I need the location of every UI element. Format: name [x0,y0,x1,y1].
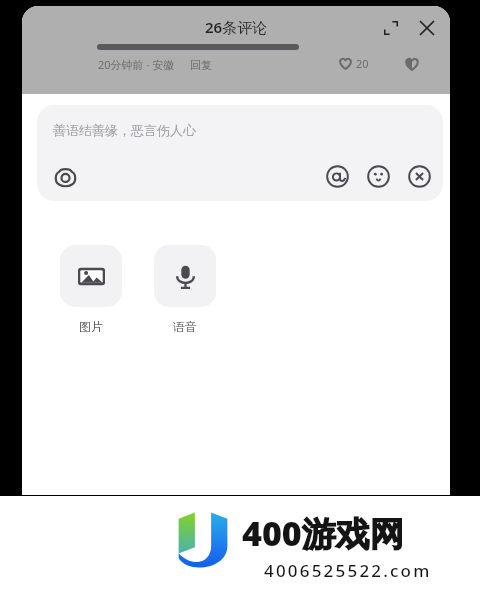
staticText: 26条评论 [205,17,268,37]
button[interactable]: Close [414,15,440,41]
staticText: 回复 [190,58,212,72]
button[interactable]: Emoji [361,159,395,193]
staticText: 图片 [79,319,103,334]
staticText: 20分钟前 · 安徽 [98,57,175,72]
button[interactable]: Clear [402,159,436,193]
staticText: 400游戏网 [242,510,404,556]
staticText: 20 [356,56,369,71]
button[interactable]: 20 [338,56,369,71]
staticText: 语音 [173,319,197,334]
button[interactable]: Camera [48,159,82,193]
staticText: 善语结善缘，恶言伤人心 [53,122,196,138]
button[interactable]: Expand [378,15,404,41]
button[interactable]: Voice [154,245,216,307]
button[interactable]: Image [60,245,122,307]
button[interactable]: 善语结善缘，恶言伤人心 [37,105,443,201]
button[interactable]: Mention [320,159,354,193]
button[interactable]: Like [402,54,422,74]
staticText: 4006525522.com [264,559,432,582]
button[interactable]: 回复 [190,58,212,72]
